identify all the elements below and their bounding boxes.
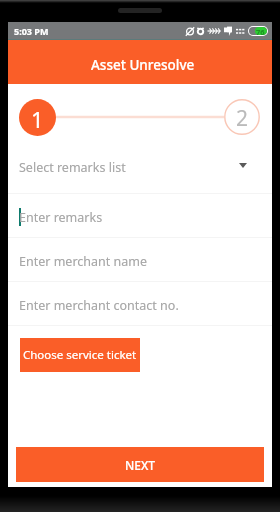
button[interactable]: Choose service ticket	[20, 338, 140, 372]
button[interactable]: 1	[19, 99, 56, 136]
staticText: NEXT	[125, 457, 156, 473]
other: Open remarks list	[239, 163, 247, 168]
button[interactable]: Enter merchant name	[8, 238, 272, 282]
button[interactable]: 2	[224, 99, 260, 135]
staticText: Enter remarks	[19, 209, 103, 226]
button[interactable]: Enter remarks	[8, 194, 272, 238]
staticText: 76	[256, 27, 265, 35]
staticText: Select remarks list	[19, 159, 126, 176]
staticText: Asset Unresolve	[91, 56, 195, 74]
staticText: 5:03 PM	[14, 25, 49, 37]
staticText: 2	[236, 104, 249, 133]
staticText: 1	[31, 104, 44, 134]
button[interactable]: Enter merchant contact no.	[8, 282, 272, 326]
button[interactable]: NEXT	[16, 447, 264, 482]
staticText: Choose service ticket	[23, 347, 137, 363]
staticText: Enter merchant contact no.	[19, 297, 179, 314]
button[interactable]: Select remarks list	[8, 150, 272, 194]
staticText: Enter merchant name	[19, 253, 148, 270]
